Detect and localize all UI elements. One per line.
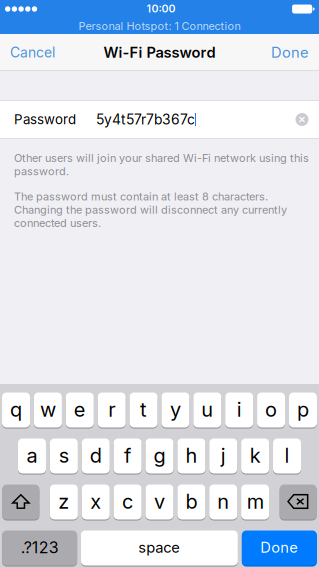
staticText: p (297, 397, 309, 422)
staticText: 10:00 (146, 2, 175, 15)
button[interactable]: r (98, 392, 126, 428)
button[interactable]: b (177, 484, 205, 520)
button[interactable]: m (241, 484, 269, 520)
button[interactable]: .?123 (2, 530, 77, 566)
staticText: e (74, 397, 86, 422)
staticText: j (221, 443, 226, 468)
button[interactable]: z (50, 484, 78, 520)
staticText: Personal Hotspot: 1 Connection (78, 19, 240, 33)
staticText: o (265, 397, 277, 422)
button[interactable]: n (209, 484, 237, 520)
button[interactable]: d (82, 438, 110, 474)
button[interactable]: t (130, 392, 158, 428)
button[interactable]: q (2, 392, 30, 428)
button[interactable]: Shift (2, 484, 39, 520)
button[interactable]: x (82, 484, 110, 520)
staticText: Other users will join your shared Wi-Fi … (14, 151, 309, 178)
button[interactable]: p (289, 392, 317, 428)
staticText: v (154, 489, 165, 514)
button[interactable]: g (145, 438, 173, 474)
staticText: a (26, 443, 37, 468)
button[interactable]: c (114, 484, 142, 520)
button[interactable]: f (114, 438, 142, 474)
staticText: Done (271, 44, 309, 61)
button[interactable]: Clear text (288, 104, 316, 134)
button[interactable]: l (273, 438, 301, 474)
staticText: k (250, 443, 261, 468)
staticText: Cancel (10, 44, 55, 61)
staticText: Password (14, 111, 76, 127)
staticText: h (185, 443, 197, 468)
staticText: w (40, 397, 56, 422)
staticText: q (10, 397, 22, 422)
staticText: space (138, 539, 180, 556)
staticText: n (217, 489, 229, 514)
staticText: 5y4t57r7b367c (96, 111, 195, 128)
button[interactable]: y (161, 392, 189, 428)
button[interactable]: space (81, 530, 238, 566)
staticText: s (59, 443, 69, 468)
staticText: x (90, 489, 101, 514)
staticText: r (108, 397, 115, 422)
button[interactable]: e (66, 392, 94, 428)
button[interactable]: Done (261, 34, 319, 71)
staticText: i (237, 397, 242, 422)
button[interactable]: w (34, 392, 62, 428)
button[interactable]: s (50, 438, 78, 474)
staticText: Wi-Fi Password (103, 44, 215, 61)
button[interactable]: Delete (280, 484, 317, 520)
button[interactable]: k (241, 438, 269, 474)
staticText: d (90, 443, 102, 468)
staticText: c (122, 489, 133, 514)
staticText: m (247, 489, 264, 514)
staticText: g (153, 443, 165, 468)
button[interactable]: v (145, 484, 173, 520)
staticText: The password must contain at least 8 cha… (14, 190, 287, 230)
staticText: b (185, 489, 197, 514)
staticText: u (201, 397, 213, 422)
button[interactable]: Done (242, 530, 317, 566)
button[interactable]: a (18, 438, 46, 474)
button[interactable]: j (209, 438, 237, 474)
button[interactable]: i (225, 392, 253, 428)
staticText: l (284, 443, 289, 468)
staticText: .?123 (21, 538, 59, 557)
staticText: t (140, 397, 147, 422)
staticText: y (170, 397, 181, 422)
button[interactable]: h (177, 438, 205, 474)
staticText: z (58, 489, 69, 514)
staticText: Done (260, 539, 298, 556)
button[interactable]: Cancel (0, 34, 65, 71)
staticText: f (124, 443, 131, 468)
button[interactable]: o (257, 392, 285, 428)
button[interactable]: u (193, 392, 221, 428)
